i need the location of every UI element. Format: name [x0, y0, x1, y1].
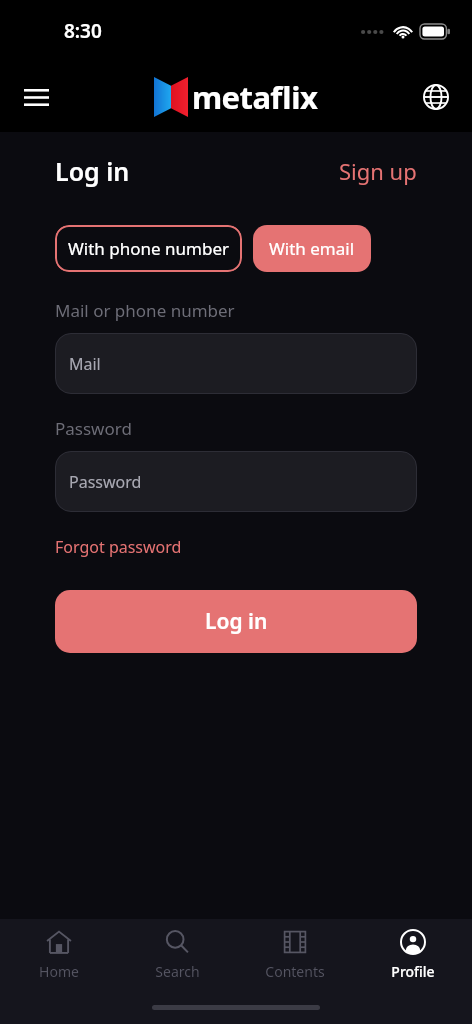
button[interactable]: Search — [118, 919, 236, 991]
staticText: With email — [269, 237, 355, 260]
button[interactable]: Home — [0, 919, 118, 991]
staticText: Mail or phone number — [55, 299, 235, 322]
button[interactable]: Language — [414, 75, 458, 119]
button[interactable]: Menu — [14, 75, 58, 119]
staticText: Log in — [205, 607, 268, 636]
staticText: Profile — [391, 962, 435, 981]
button[interactable]: Log in — [55, 590, 417, 653]
button[interactable]: Log in — [55, 154, 130, 188]
button[interactable]: Mail — [55, 333, 417, 394]
staticText: Search — [155, 962, 200, 981]
staticText: Password — [55, 417, 132, 440]
button[interactable]: Forgot password — [55, 536, 182, 558]
button[interactable]: Profile — [354, 919, 472, 991]
staticText: Home — [39, 962, 79, 981]
staticText: 8:30 — [64, 18, 102, 44]
button[interactable]: With phone number — [55, 225, 242, 272]
staticText: metaflix — [192, 76, 318, 118]
button[interactable]: With email — [253, 225, 371, 272]
staticText: Contents — [265, 962, 325, 981]
button[interactable]: Contents — [236, 919, 354, 991]
button[interactable]: Sign up — [339, 156, 417, 186]
staticText: Mail — [69, 353, 101, 375]
staticText: Password — [69, 471, 142, 493]
staticText: With phone number — [68, 237, 229, 260]
button[interactable]: Password — [55, 451, 417, 512]
